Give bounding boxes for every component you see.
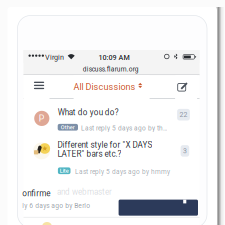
button[interactable]: Menu: [23, 75, 49, 99]
button[interactable]: All Discussions: [74, 75, 150, 99]
staticText: All Discussions: [74, 82, 136, 92]
staticText: P: [39, 113, 45, 123]
staticText: Other: [61, 124, 75, 131]
staticText: LATER" bars etc.?: [57, 149, 121, 159]
staticText: 10:09 AM: [98, 53, 129, 62]
staticText: discuss.flarum.org: [83, 65, 139, 73]
button[interactable]: Start a discussion: [175, 75, 197, 99]
staticText: 3: [183, 147, 187, 155]
button[interactable]: Different style for "X DAYS: [23, 135, 199, 182]
staticText: and webmaster: [57, 187, 112, 197]
staticText: 22: [179, 111, 187, 119]
staticText: Different style for "X DAYS: [57, 140, 152, 150]
staticText: Lite: [60, 167, 69, 174]
button[interactable]: P: [23, 99, 199, 135]
staticText: ly 6 days ago by Berlo: [22, 202, 90, 210]
staticText: onfirme: [22, 189, 50, 198]
staticText: What do you do?: [58, 108, 119, 117]
staticText: Virgin: [45, 53, 64, 61]
staticText: Last reply 5 days ago by th…: [81, 124, 167, 132]
staticText: Last reply 5 days ago by hmmy: [75, 168, 170, 176]
